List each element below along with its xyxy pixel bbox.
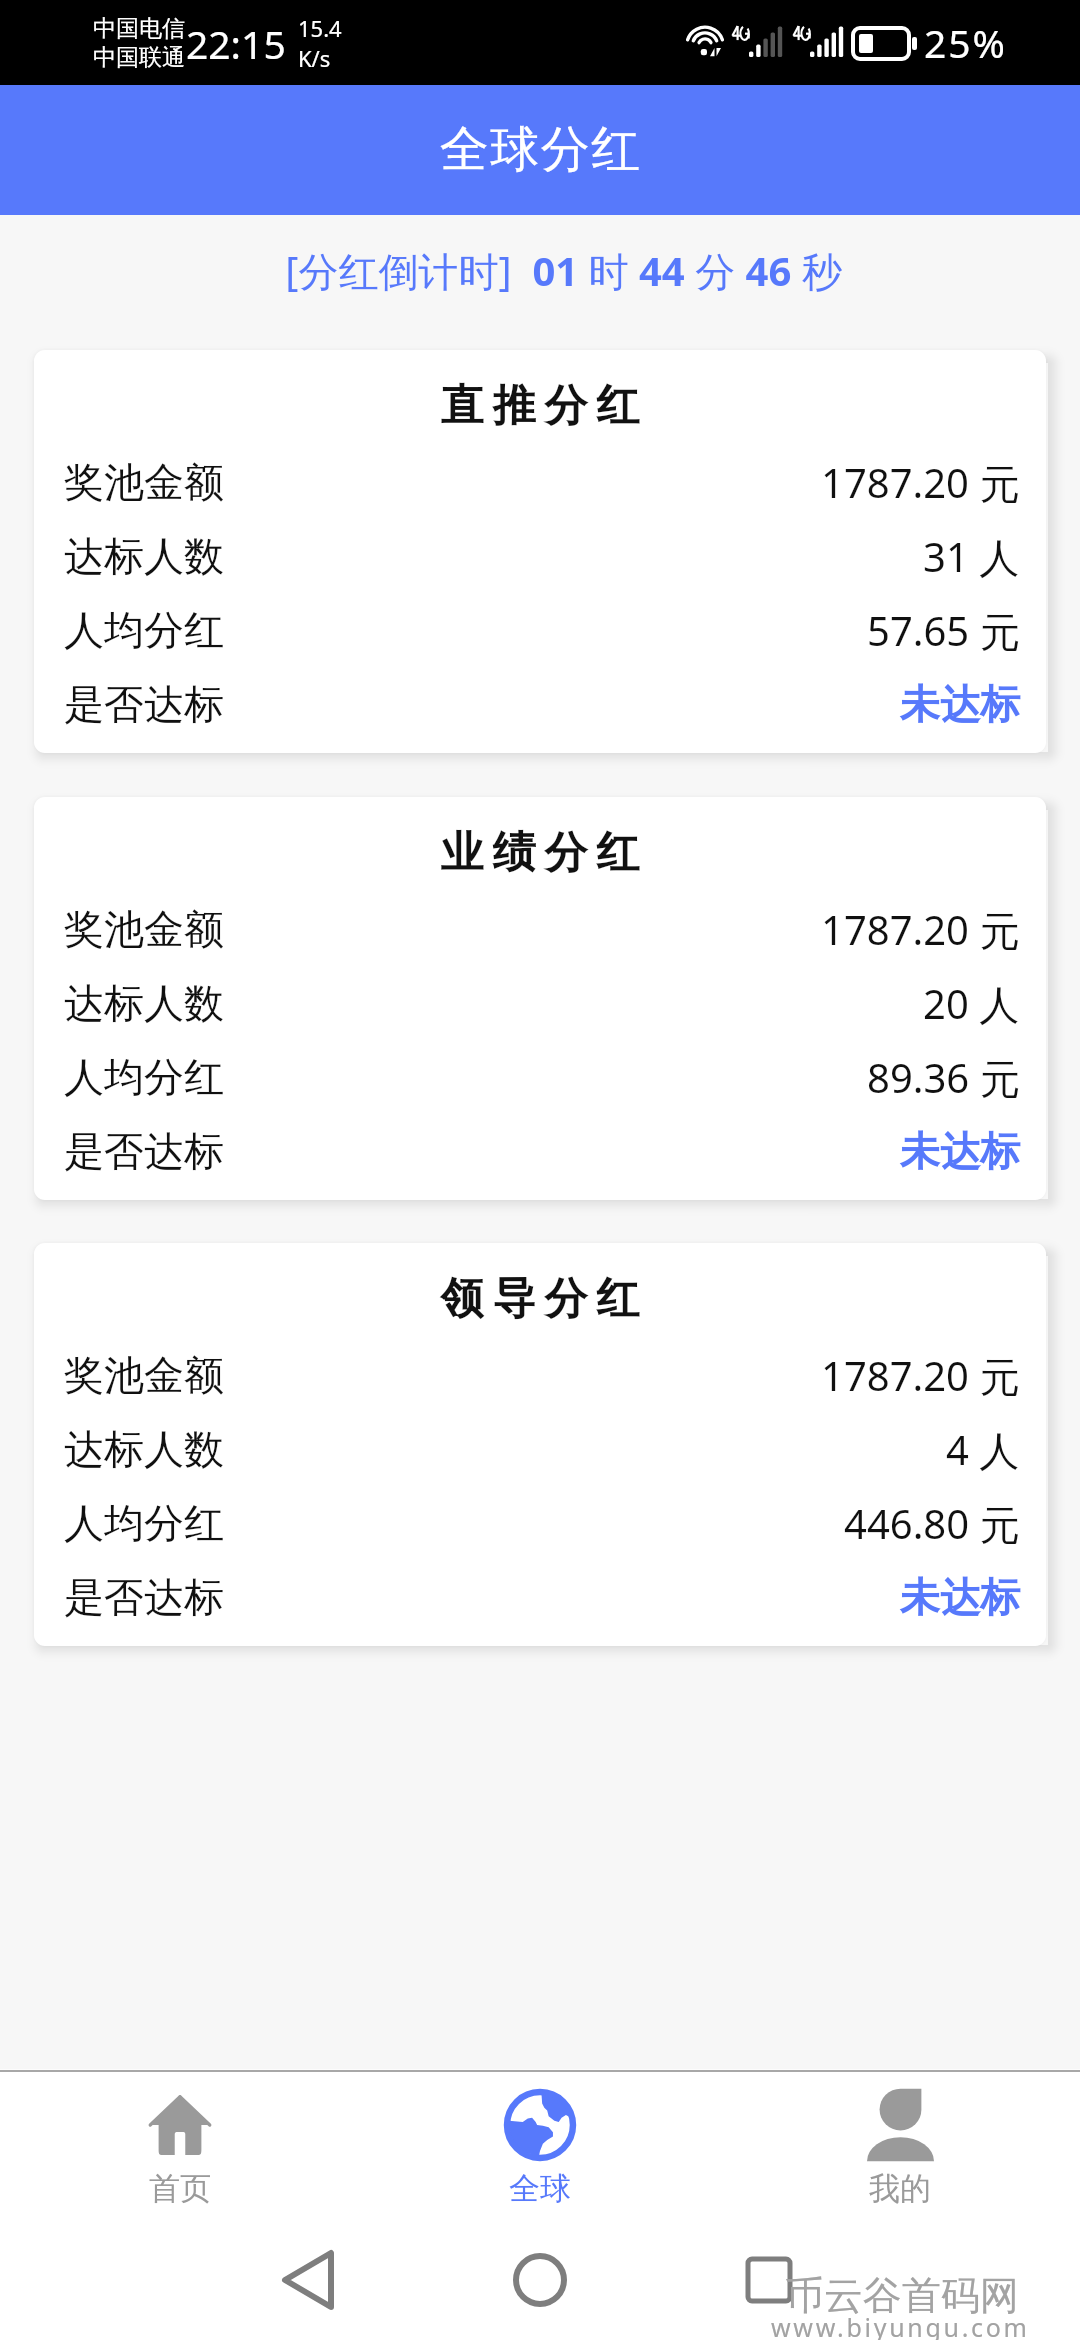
staticText: 57.65 元 [867,603,1020,658]
button[interactable]: 全球 [360,2072,720,2225]
staticText: 奖池金额 [64,904,224,954]
staticText: 全球分红 [439,119,641,181]
button[interactable]: 我的 [720,2072,1080,2225]
button[interactable]: Back [0,2225,360,2340]
staticText: 领导分红 [436,1272,644,1326]
staticText: 业绩分红 [436,826,644,880]
staticText: 是否达标 [64,1572,224,1622]
staticText: 446.80 元 [844,1496,1020,1551]
staticText: 未达标 [900,1126,1020,1176]
button[interactable]: Recent apps [720,2225,1080,2340]
staticText: [分红倒计时] 01 时 44 分 46 秒 [285,243,842,298]
button[interactable]: 业绩分红 [34,797,1046,1200]
button[interactable]: 首页 [0,2072,360,2225]
staticText: 31 人 [923,529,1020,584]
staticText: 未达标 [900,1572,1020,1622]
button[interactable]: 领导分红 [34,1243,1046,1646]
staticText: 全球 [509,2169,571,2208]
button[interactable]: Home [360,2225,720,2340]
staticText: 达标人数 [64,978,224,1028]
staticText: 奖池金额 [64,1350,224,1400]
staticText: www.biyungu.com [771,2310,1030,2340]
staticText: 1787.20 元 [821,1348,1020,1403]
staticText: 人均分红 [64,1052,224,1102]
staticText: 奖池金额 [64,457,224,507]
staticText: 达标人数 [64,1424,224,1474]
staticText: 直推分红 [436,379,644,433]
staticText: 是否达标 [64,679,224,729]
staticText: 币云谷首码网 [785,2271,1019,2320]
staticText: 我的 [869,2169,931,2208]
button[interactable]: 全球分红 [0,85,1080,215]
staticText: 1787.20 元 [821,455,1020,510]
staticText: K/s [298,43,331,73]
staticText: 89.36 元 [867,1050,1020,1105]
staticText: 中国联通 [93,43,185,72]
staticText: 是否达标 [64,1126,224,1176]
staticText: 中国电信 [93,14,185,43]
staticText: 首页 [149,2169,211,2208]
staticText: 15.4 [298,13,342,43]
staticText: 20 人 [923,976,1020,1031]
staticText: 人均分红 [64,1498,224,1548]
staticText: 人均分红 [64,605,224,655]
staticText: 达标人数 [64,531,224,581]
button[interactable]: 直推分红 [34,350,1046,753]
staticText: 22:15 [186,17,286,70]
staticText: 未达标 [900,679,1020,729]
staticText: 4 人 [946,1422,1020,1477]
staticText: 25% [924,16,1008,69]
staticText: 1787.20 元 [821,902,1020,957]
